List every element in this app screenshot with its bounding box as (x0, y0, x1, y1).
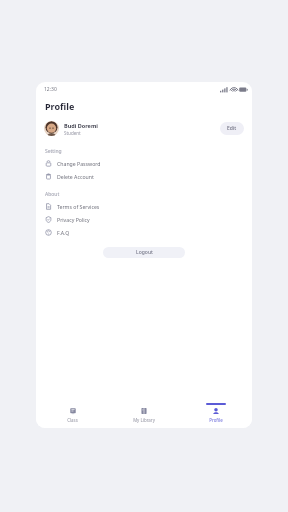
staticText: Class (67, 417, 78, 423)
button[interactable]: Budi Doremi (36, 119, 252, 138)
staticText: Terms of Services (57, 203, 100, 210)
button[interactable]: Change Password (36, 157, 252, 170)
button[interactable]: Delete Account (36, 170, 252, 183)
staticText: Budi Doremi (64, 122, 98, 129)
button[interactable]: Privacy Policy (36, 213, 252, 226)
button[interactable]: My Library (108, 402, 180, 428)
staticText: Edit (227, 125, 237, 132)
staticText: Delete Account (57, 173, 94, 180)
staticText: Profile (209, 417, 223, 423)
button[interactable]: Profile (180, 402, 252, 428)
staticText: F.A.Q (57, 229, 70, 236)
button[interactable]: Terms of Services (36, 200, 252, 213)
staticText: Logout (136, 249, 153, 256)
button[interactable]: Class (36, 402, 108, 428)
staticText: Student (64, 130, 81, 136)
staticText: Privacy Policy (57, 216, 90, 223)
staticText: 12:30 (44, 86, 57, 93)
button[interactable]: Edit (220, 122, 244, 135)
button[interactable]: F.A.Q (36, 226, 252, 239)
staticText: Profile (45, 100, 75, 112)
staticText: My Library (133, 417, 155, 423)
staticText: Change Password (57, 160, 101, 167)
staticText: Setting (45, 148, 62, 155)
button[interactable]: Logout (103, 247, 185, 258)
staticText: About (45, 191, 60, 198)
